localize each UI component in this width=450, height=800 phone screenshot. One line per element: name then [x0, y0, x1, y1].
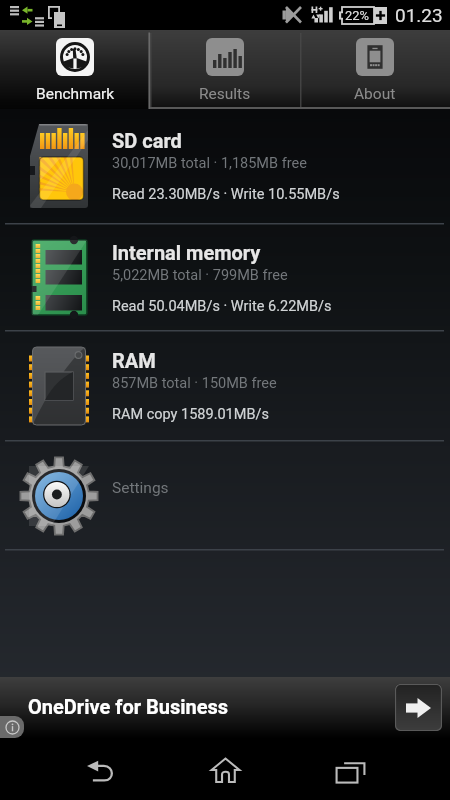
- button[interactable]: About: [300, 30, 450, 109]
- button[interactable]: Ad choices: [0, 716, 24, 738]
- button[interactable]: Benchmark: [0, 30, 150, 109]
- staticText: Read 50.04MB/s · Write 6.22MB/s: [112, 298, 332, 315]
- button[interactable]: Internal memory: [0, 225, 450, 330]
- button[interactable]: Back: [38, 738, 163, 800]
- staticText: Benchmark: [36, 85, 115, 103]
- button[interactable]: OneDrive for Business: [0, 677, 450, 738]
- button[interactable]: Home: [163, 738, 288, 800]
- staticText: 30,017MB total · 1,185MB free: [112, 155, 307, 172]
- staticText: Results: [199, 85, 251, 103]
- staticText: Settings: [112, 479, 169, 497]
- staticText: 01.23: [395, 4, 443, 26]
- staticText: Internal memory: [112, 241, 261, 264]
- button[interactable]: RAM: [0, 332, 450, 440]
- staticText: SD card: [112, 129, 182, 152]
- staticText: 22%: [345, 8, 370, 23]
- staticText: 5,022MB total · 799MB free: [112, 267, 288, 284]
- button[interactable]: Recent apps: [288, 738, 413, 800]
- staticText: About: [354, 85, 396, 103]
- staticText: RAM: [112, 349, 156, 372]
- button[interactable]: SD card: [0, 109, 450, 223]
- button[interactable]: Results: [150, 30, 300, 109]
- staticText: OneDrive for Business: [28, 695, 229, 718]
- staticText: Read 23.30MB/s · Write 10.55MB/s: [112, 186, 340, 203]
- button[interactable]: Settings: [0, 442, 450, 549]
- staticText: RAM copy 1589.01MB/s: [112, 406, 269, 423]
- button[interactable]: Open advert: [395, 684, 442, 731]
- staticText: 857MB total · 150MB free: [112, 375, 277, 392]
